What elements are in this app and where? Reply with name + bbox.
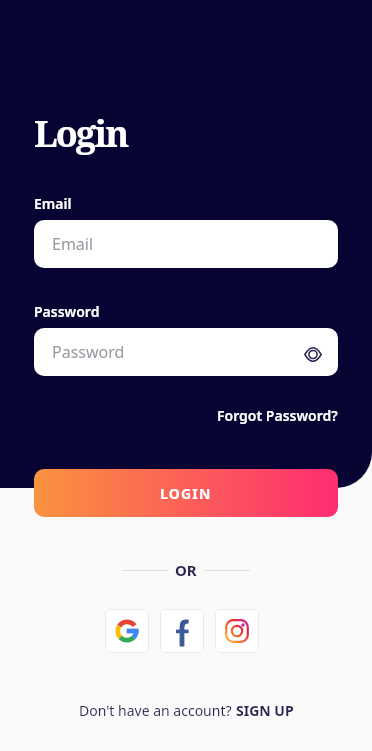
staticText: Password — [34, 302, 100, 321]
staticText: Don't have an account? — [79, 701, 236, 720]
button[interactable] — [215, 609, 259, 653]
button[interactable] — [160, 609, 204, 653]
staticText: OR — [175, 560, 197, 580]
staticText: LOGIN — [160, 484, 212, 503]
button[interactable]: SIGN UP — [236, 701, 294, 720]
button[interactable]: LOGIN — [34, 469, 338, 517]
button[interactable]: Email — [34, 220, 338, 268]
button[interactable]: Forgot Password? — [217, 406, 338, 425]
staticText: Email — [52, 233, 94, 255]
staticText: Login — [34, 109, 128, 158]
staticText: Password — [52, 341, 125, 363]
button[interactable]: Password — [34, 328, 338, 376]
staticText: Email — [34, 194, 72, 213]
button[interactable] — [105, 609, 149, 653]
